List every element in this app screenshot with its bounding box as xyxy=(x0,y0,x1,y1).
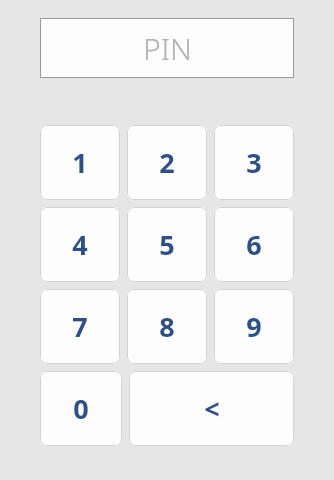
staticText: 3 xyxy=(246,144,262,181)
staticText: < xyxy=(204,390,220,427)
button[interactable]: 5 xyxy=(127,207,207,282)
button[interactable]: 4 xyxy=(40,207,120,282)
button[interactable]: 7 xyxy=(40,289,120,364)
staticText: 6 xyxy=(246,226,262,263)
staticText: 9 xyxy=(246,308,262,345)
staticText: 7 xyxy=(72,308,88,345)
button[interactable]: 1 xyxy=(40,125,120,200)
button[interactable]: 6 xyxy=(214,207,294,282)
button[interactable]: 3 xyxy=(214,125,294,200)
staticText: 1 xyxy=(72,144,88,181)
staticText: 5 xyxy=(159,226,175,263)
button[interactable]: 9 xyxy=(214,289,294,364)
staticText: 2 xyxy=(159,144,175,181)
button[interactable]: 8 xyxy=(127,289,207,364)
button[interactable]: PIN xyxy=(40,18,294,78)
staticText: 4 xyxy=(72,226,88,263)
button[interactable]: 2 xyxy=(127,125,207,200)
button[interactable]: Backspace xyxy=(129,371,294,446)
staticText: 0 xyxy=(73,390,89,427)
staticText: 8 xyxy=(159,308,175,345)
button[interactable]: 0 xyxy=(40,371,122,446)
staticText: PIN xyxy=(143,28,192,69)
